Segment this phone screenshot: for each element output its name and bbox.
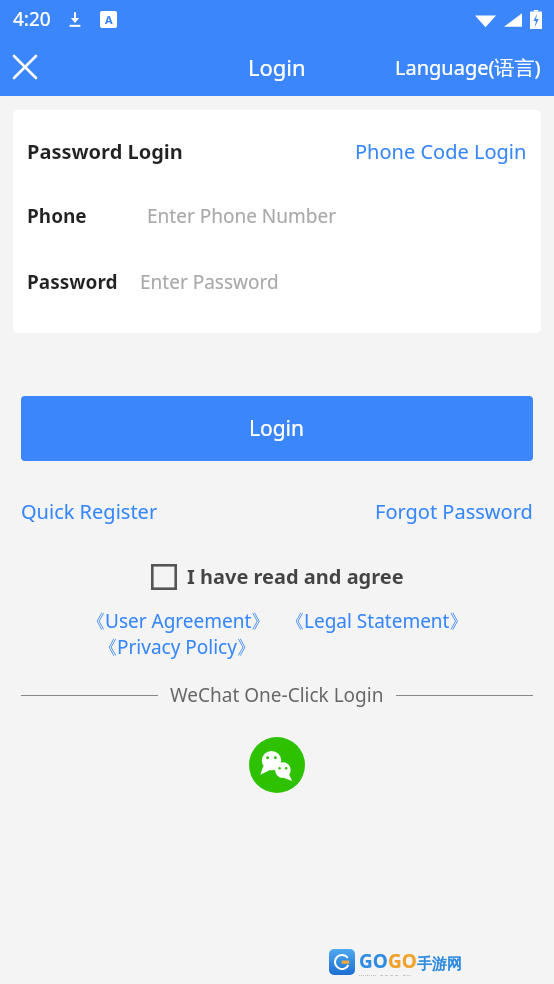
staticText: GO <box>388 948 417 974</box>
staticText: 《Legal Statement》 <box>285 608 469 634</box>
staticText: 4:20 <box>13 6 51 32</box>
button[interactable]: 《Legal Statement》 <box>285 608 469 634</box>
button[interactable]: I have read and agree <box>151 563 404 590</box>
staticText: GO <box>359 948 388 974</box>
button[interactable]: Phone <box>13 203 541 229</box>
staticText: Password <box>27 269 118 295</box>
button[interactable]: Close <box>0 42 50 92</box>
button[interactable]: 《User Agreement》 <box>86 608 271 634</box>
button[interactable]: Login <box>21 396 533 461</box>
staticText: Phone Code Login <box>355 138 527 165</box>
staticText: Forgot Password <box>375 498 533 525</box>
staticText: W W W . G O G O . C N <box>359 974 411 976</box>
staticText: Language(语言) <box>395 54 541 81</box>
button[interactable]: Language(语言) <box>382 44 554 91</box>
staticText: Quick Register <box>21 498 158 525</box>
staticText: Enter Password <box>140 269 279 295</box>
staticText: Login <box>249 414 305 443</box>
button[interactable]: Forgot Password <box>375 498 533 525</box>
button[interactable]: 《Privacy Policy》 <box>98 634 256 660</box>
staticText: 《Privacy Policy》 <box>98 634 256 660</box>
button[interactable]: Password <box>13 269 541 295</box>
staticText: Enter Phone Number <box>147 203 336 229</box>
staticText: 手游网 <box>417 955 462 974</box>
staticText: Password Login <box>27 138 183 165</box>
staticText: WeChat One-Click Login <box>170 682 384 708</box>
staticText: Login <box>248 52 306 82</box>
button[interactable]: Phone Code Login <box>355 138 527 165</box>
staticText: I have read and agree <box>187 563 404 590</box>
staticText: A <box>105 12 113 27</box>
button[interactable]: WeChat One-Click Login <box>249 737 305 793</box>
staticText: 《User Agreement》 <box>86 608 271 634</box>
staticText: Phone <box>27 203 87 229</box>
button[interactable]: Quick Register <box>21 498 158 525</box>
